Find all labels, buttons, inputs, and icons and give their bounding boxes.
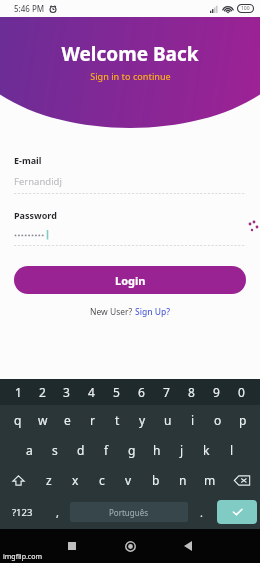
button[interactable]: w	[30, 407, 55, 433]
button[interactable]: 7	[154, 379, 179, 405]
button[interactable]: u	[155, 407, 180, 433]
staticText: y	[139, 412, 146, 428]
button[interactable]: 9	[204, 379, 229, 405]
button[interactable]: o	[205, 407, 230, 433]
staticText: ?123	[12, 506, 33, 519]
button[interactable]: c	[88, 465, 115, 495]
button[interactable]: Shift	[0, 465, 36, 495]
button[interactable]: k	[194, 437, 219, 463]
button[interactable]: 4	[79, 379, 104, 405]
button[interactable]: 3	[54, 379, 79, 405]
button[interactable]: ?123	[0, 495, 44, 529]
button[interactable]: b	[142, 465, 169, 495]
button[interactable]: ,	[44, 495, 70, 529]
button[interactable]: n	[169, 465, 196, 495]
staticText: p	[239, 412, 247, 428]
staticText: b	[152, 472, 160, 488]
staticText: z	[46, 472, 52, 488]
staticText: x	[72, 472, 79, 488]
button[interactable]: 1	[6, 379, 30, 405]
staticText: Português	[109, 507, 149, 518]
button[interactable]: i	[180, 407, 205, 433]
staticText: r	[90, 412, 95, 428]
button[interactable]: t	[105, 407, 130, 433]
staticText: imgflip.com	[3, 552, 42, 562]
button[interactable]: Space	[70, 502, 188, 522]
button[interactable]: Fernandidj	[14, 175, 246, 188]
staticText: 3	[63, 384, 70, 400]
staticText: t	[115, 412, 120, 428]
staticText: 0	[238, 384, 245, 400]
button[interactable]: 6	[129, 379, 154, 405]
staticText: d	[77, 442, 85, 458]
button[interactable]: Backspace	[223, 465, 260, 495]
staticText: h	[153, 442, 161, 458]
staticText: s	[52, 442, 58, 458]
button[interactable]: Home	[101, 529, 159, 563]
staticText: 6	[138, 384, 145, 400]
staticText: e	[64, 412, 71, 428]
staticText: Login	[115, 273, 146, 288]
staticText: 5:46 PM	[14, 3, 45, 14]
staticText: i	[191, 412, 195, 428]
button[interactable]: a	[16, 437, 42, 463]
button[interactable]: g	[119, 437, 144, 463]
button[interactable]: Recents	[43, 529, 101, 563]
staticText: w	[38, 412, 48, 428]
button[interactable]: d	[68, 437, 94, 463]
button[interactable]: 0	[229, 379, 254, 405]
button[interactable]: y	[130, 407, 155, 433]
staticText: l	[230, 442, 234, 458]
staticText: m	[204, 472, 216, 488]
staticText: 100	[241, 5, 250, 12]
staticText: Sign Up?	[135, 306, 171, 318]
button[interactable]: v	[115, 465, 142, 495]
staticText: k	[203, 442, 210, 458]
staticText: q	[14, 412, 22, 428]
staticText: v	[125, 472, 132, 488]
staticText: o	[214, 412, 222, 428]
staticText: Fernandidj	[14, 175, 62, 188]
button[interactable]: Back	[159, 529, 217, 563]
button[interactable]: 5	[104, 379, 129, 405]
staticText: E-mail	[14, 154, 42, 166]
staticText: Welcome Back	[61, 41, 199, 67]
button[interactable]: .	[188, 495, 214, 529]
staticText: 9	[213, 384, 220, 400]
button[interactable]: z	[36, 465, 62, 495]
staticText: ,	[56, 505, 59, 520]
button[interactable]: 8	[179, 379, 204, 405]
button[interactable]: q	[5, 407, 30, 433]
staticText: g	[128, 442, 136, 458]
button[interactable]: 2	[30, 379, 54, 405]
staticText: j	[180, 442, 184, 458]
staticText: .	[200, 505, 203, 520]
button[interactable]: e	[55, 407, 80, 433]
button[interactable]: f	[94, 437, 119, 463]
staticText: u	[164, 412, 172, 428]
button[interactable]: x	[62, 465, 88, 495]
staticText: 2	[39, 384, 46, 400]
button[interactable]: p	[230, 407, 255, 433]
staticText: 5	[113, 384, 120, 400]
button[interactable]: Sign Up?	[135, 306, 171, 318]
staticText: Sign in to continue	[90, 70, 171, 82]
staticText: 7	[163, 384, 170, 400]
staticText: 8	[188, 384, 195, 400]
staticText: 4	[88, 384, 95, 400]
staticText: New User?	[90, 306, 135, 318]
button[interactable]: m	[196, 465, 223, 495]
button[interactable]	[14, 229, 246, 240]
button[interactable]: j	[169, 437, 194, 463]
button[interactable]: r	[80, 407, 105, 433]
button[interactable]: s	[42, 437, 68, 463]
button[interactable]: h	[144, 437, 169, 463]
staticText: n	[179, 472, 187, 488]
button[interactable]: l	[219, 437, 244, 463]
button[interactable]: Enter	[217, 500, 257, 524]
staticText: a	[26, 442, 33, 458]
staticText: Password	[14, 209, 57, 221]
button[interactable]: Login	[14, 266, 246, 294]
staticText: f	[104, 442, 109, 458]
staticText: c	[99, 472, 105, 488]
